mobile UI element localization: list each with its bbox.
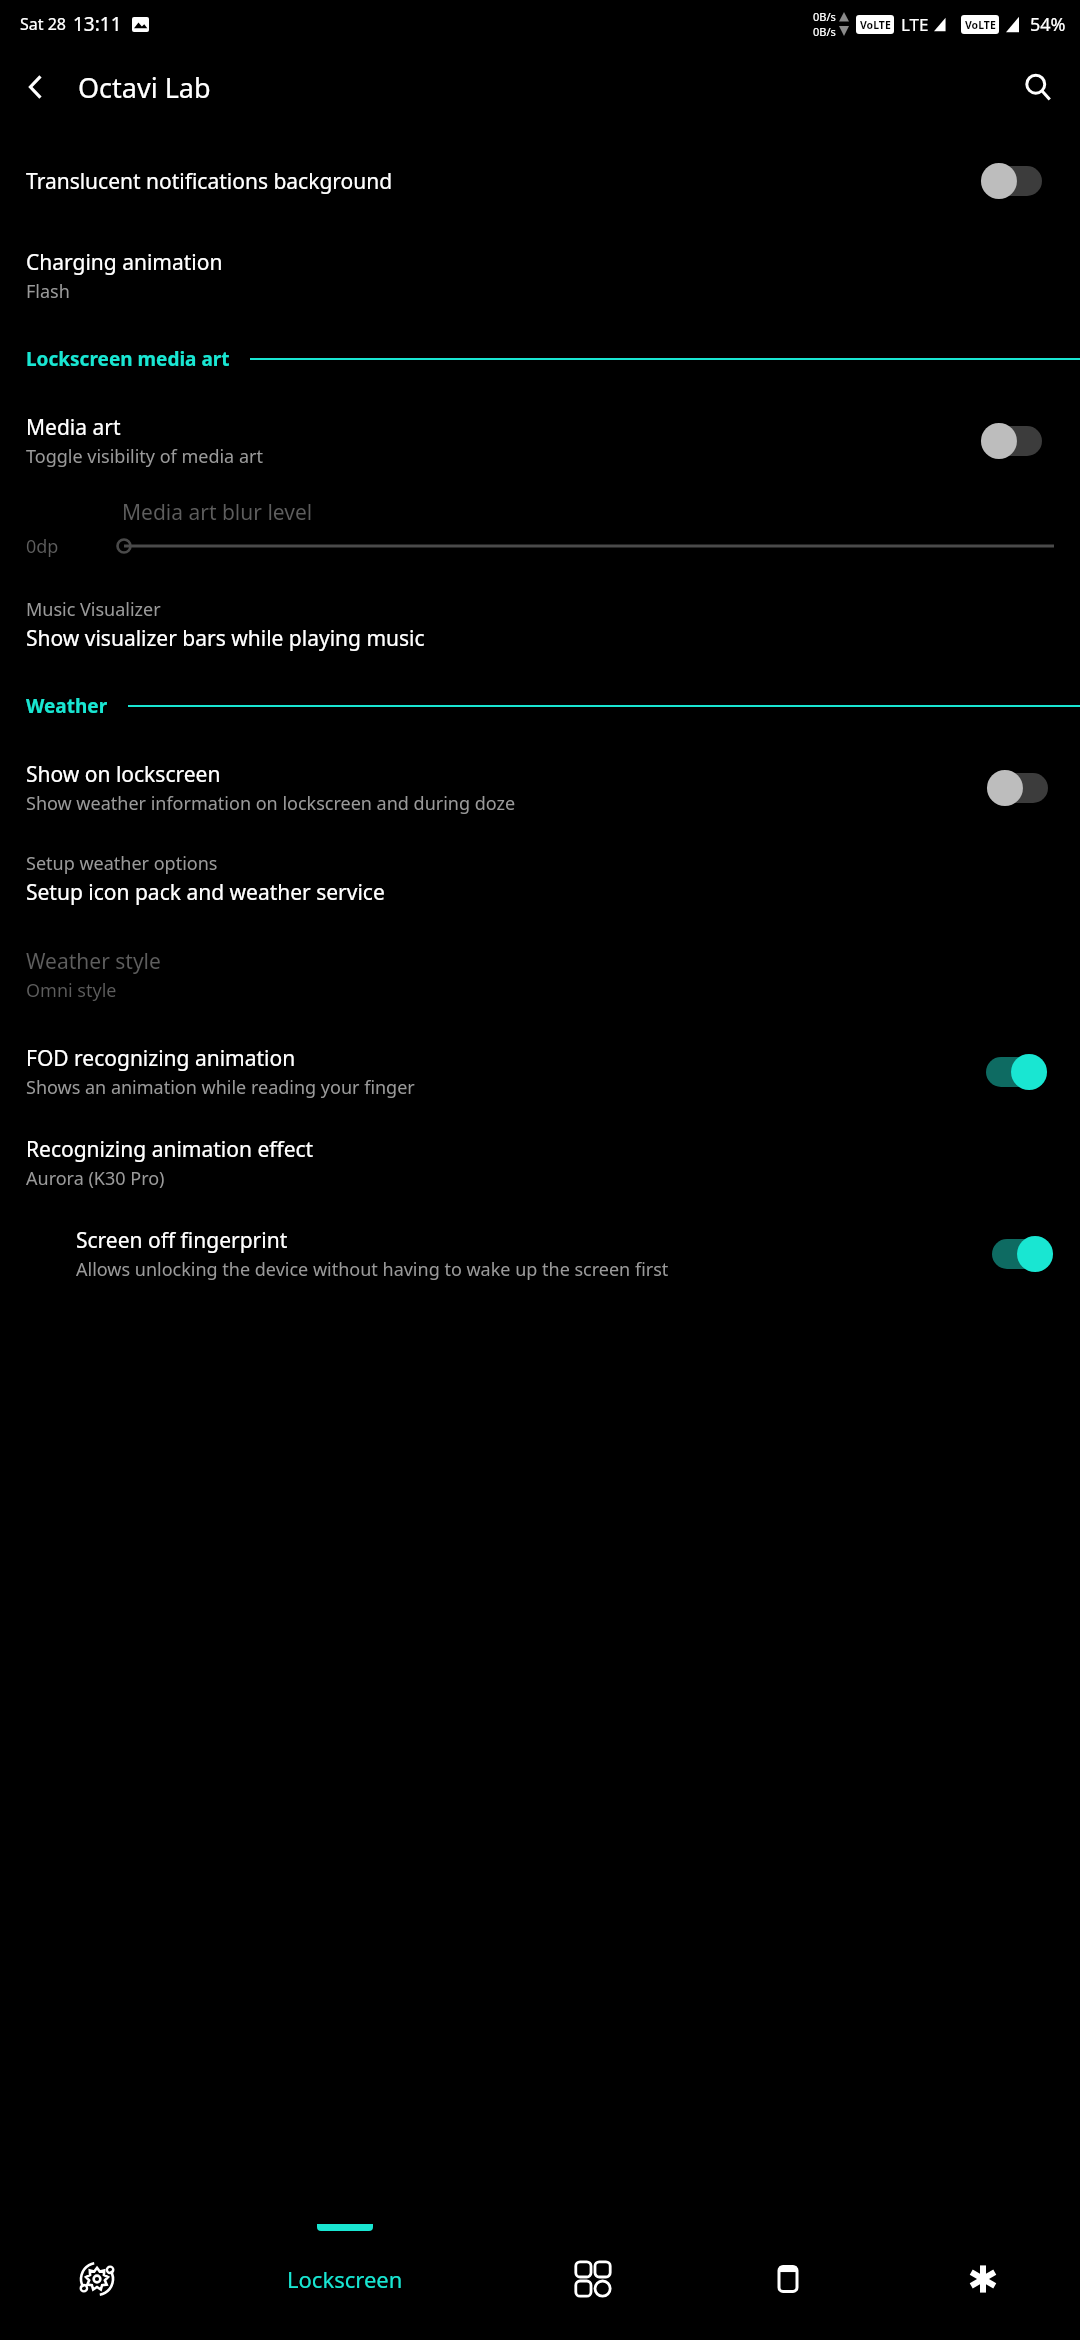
button[interactable]: Show on lockscreen <box>0 755 1080 821</box>
staticText: Recognizing animation effect <box>26 1135 314 1164</box>
staticText: Show weather information on lockscreen a… <box>26 791 516 816</box>
button[interactable]: Recognizing animation effect <box>0 1131 1080 1195</box>
button[interactable]: Media art toggle <box>968 412 1060 470</box>
button[interactable]: Translucent notifications background tog… <box>968 152 1060 210</box>
button[interactable]: Media art blur level <box>0 488 1080 575</box>
staticText: Weather style <box>26 947 161 976</box>
staticText: Aurora (K30 Pro) <box>26 1166 165 1191</box>
button[interactable]: Widgets <box>495 2218 690 2340</box>
staticText: Media art blur level <box>122 498 313 527</box>
staticText: Setup icon pack and weather service <box>26 878 385 907</box>
button[interactable]: Screen off fingerprint toggle <box>974 1225 1066 1283</box>
staticText: Sat 28 <box>20 13 67 35</box>
button[interactable]: Translucent notifications background <box>0 144 1080 218</box>
staticText: Allows unlocking the device without havi… <box>76 1257 669 1282</box>
staticText: VoLTE <box>965 18 996 32</box>
staticText: Translucent notifications background <box>26 167 393 196</box>
staticText: 0B/s <box>813 24 836 39</box>
staticText: 13:11 <box>73 11 122 37</box>
staticText: VoLTE <box>860 18 891 32</box>
staticText: Setup weather options <box>26 851 218 876</box>
button[interactable]: Charging animation <box>0 244 1080 308</box>
button[interactable]: Setup weather options <box>0 847 1080 911</box>
staticText: Show visualizer bars while playing music <box>26 624 425 653</box>
staticText: LTE <box>901 13 929 36</box>
staticText: Lockscreen <box>287 2264 403 2294</box>
staticText: FOD recognizing animation <box>26 1044 296 1073</box>
staticText: Octavi Lab <box>78 69 211 106</box>
button[interactable]: Misc <box>885 2218 1080 2340</box>
staticText: Music Visualizer <box>26 597 161 622</box>
button[interactable]: Back <box>8 59 64 115</box>
button[interactable]: Weather style <box>0 943 1080 1007</box>
button[interactable]: Lockscreen <box>194 2218 495 2340</box>
staticText: 0dp <box>26 534 118 559</box>
staticText: Show on lockscreen <box>26 760 221 789</box>
button[interactable]: Status bar <box>690 2218 885 2340</box>
staticText: Omni style <box>26 978 117 1003</box>
staticText: Screen off fingerprint <box>76 1226 288 1255</box>
button[interactable]: FOD recognizing animation <box>0 1039 1080 1105</box>
staticText: 54% <box>1030 12 1066 37</box>
button[interactable]: Settings <box>0 2218 194 2340</box>
staticText: Media art <box>26 413 121 442</box>
button[interactable]: Screen off fingerprint <box>0 1221 1080 1287</box>
button[interactable]: FOD recognizing animation toggle <box>968 1043 1060 1101</box>
button[interactable]: Show weather on lockscreen toggle <box>974 759 1066 817</box>
staticText: Shows an animation while reading your fi… <box>26 1075 415 1100</box>
staticText: Lockscreen media art <box>26 346 230 372</box>
staticText: Weather <box>26 693 108 719</box>
staticText: Flash <box>26 279 70 304</box>
staticText: Charging animation <box>26 248 223 277</box>
staticText: Toggle visibility of media art <box>26 444 263 469</box>
button[interactable]: Search <box>1010 59 1066 115</box>
staticText: 0B/s <box>813 9 836 24</box>
button[interactable]: Music Visualizer <box>0 593 1080 657</box>
button[interactable]: Media art <box>0 408 1080 474</box>
